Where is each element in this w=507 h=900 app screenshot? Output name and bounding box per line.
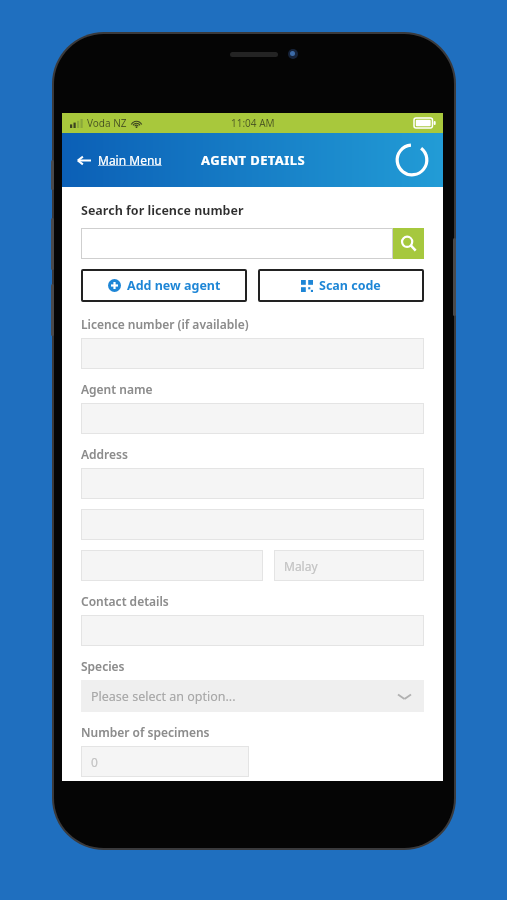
button[interactable]: Loading: [393, 141, 431, 179]
staticText: Search for licence number: [81, 202, 244, 219]
button[interactable]: Malay: [274, 550, 424, 581]
staticText: Licence number (if available): [81, 316, 249, 332]
button[interactable]: Main Menu: [62, 144, 174, 176]
button[interactable]: Please select an option...: [81, 680, 424, 712]
staticText: AGENT DETAILS: [201, 151, 305, 169]
staticText: Main Menu: [98, 152, 162, 168]
staticText: Number of specimens: [81, 724, 210, 740]
button[interactable]: Scan code: [258, 269, 424, 302]
button[interactable]: [81, 228, 393, 259]
button[interactable]: [81, 338, 424, 369]
staticText: Malay: [284, 558, 318, 574]
button[interactable]: [81, 550, 263, 581]
button[interactable]: Add new agent: [81, 269, 247, 302]
staticText: Contact details: [81, 593, 169, 609]
staticText: Scan code: [319, 277, 381, 294]
staticText: Add new agent: [127, 277, 221, 294]
button[interactable]: [81, 468, 424, 499]
button[interactable]: [81, 509, 424, 540]
button[interactable]: [81, 403, 424, 434]
staticText: Please select an option...: [91, 688, 236, 705]
staticText: Species: [81, 658, 125, 674]
button[interactable]: [81, 615, 424, 646]
button[interactable]: Search: [393, 228, 424, 259]
staticText: Agent name: [81, 381, 153, 397]
staticText: Address: [81, 446, 128, 462]
staticText: 0: [91, 754, 98, 770]
button[interactable]: 0: [81, 746, 249, 777]
staticText: 11:04 AM: [231, 116, 275, 130]
staticText: Voda NZ: [87, 116, 127, 130]
